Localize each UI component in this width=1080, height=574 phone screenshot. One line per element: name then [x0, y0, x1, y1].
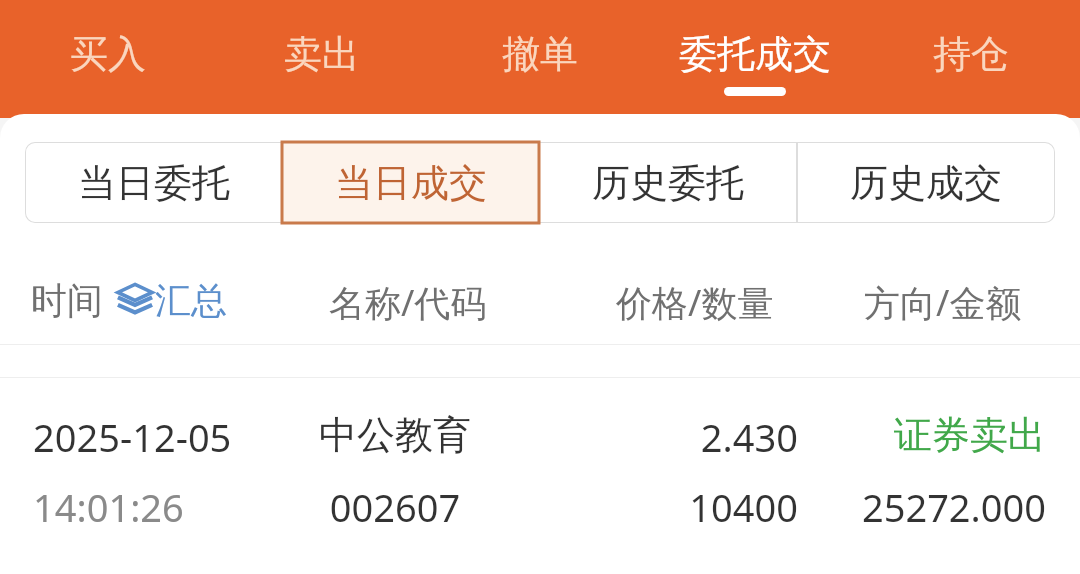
staticText: 撤单 — [502, 30, 578, 78]
staticText: 方向/金额 — [864, 278, 1022, 327]
staticText: 25272.000 — [806, 481, 1046, 533]
staticText: 14:01:26 — [33, 481, 184, 533]
staticText: 2025-12-05 — [33, 411, 232, 463]
staticText: 委托成交 — [679, 30, 831, 78]
staticText: 持仓 — [933, 30, 1009, 78]
button[interactable]: 买入 — [38, 8, 178, 108]
staticText: 名称/代码 — [329, 278, 487, 327]
staticText: 买入 — [70, 30, 146, 78]
button[interactable]: 当日成交 — [282, 142, 539, 223]
staticText: 10400 — [548, 481, 798, 533]
staticText: 汇总 — [155, 278, 227, 323]
staticText: 当日成交 — [335, 159, 487, 207]
staticText: 当日委托 — [78, 159, 230, 207]
staticText: 历史成交 — [850, 159, 1002, 207]
staticText: 证券卖出 — [806, 411, 1046, 459]
button[interactable]: 撤单 — [470, 8, 610, 108]
staticText: 时间 — [31, 278, 103, 323]
staticText: 2.430 — [548, 411, 798, 463]
staticText: 002607 — [270, 481, 520, 533]
staticText: 中公教育 — [270, 411, 520, 459]
button[interactable]: 当日委托 — [25, 142, 282, 223]
button[interactable]: 委托成交 — [645, 8, 865, 108]
button[interactable]: 历史成交 — [797, 142, 1055, 223]
button[interactable]: 汇总 — [116, 282, 154, 322]
button[interactable]: 历史委托 — [539, 142, 797, 223]
staticText: 卖出 — [284, 30, 360, 78]
staticText: 历史委托 — [592, 159, 744, 207]
staticText: 价格/数量 — [616, 278, 774, 327]
button[interactable]: 持仓 — [901, 8, 1041, 108]
button[interactable]: 2025-12-05 — [0, 378, 1080, 568]
button[interactable]: 卖出 — [252, 8, 392, 108]
